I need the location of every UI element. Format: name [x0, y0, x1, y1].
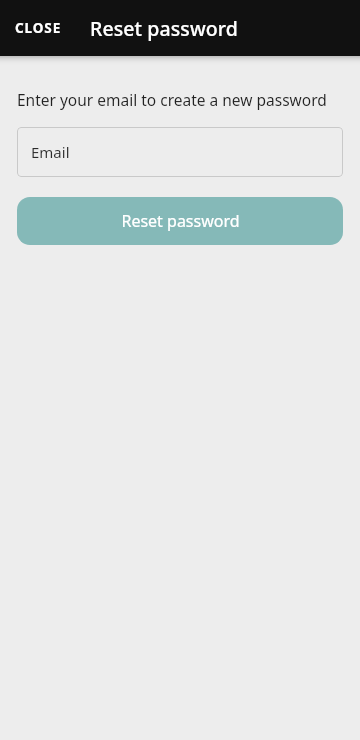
staticText: Reset password — [121, 210, 240, 232]
button[interactable]: Reset password — [17, 197, 343, 245]
staticText: CLOSE — [15, 19, 62, 37]
staticText: Enter your email to create a new passwor… — [17, 89, 327, 110]
staticText: Email — [31, 142, 70, 162]
button[interactable]: CLOSE — [15, 13, 62, 43]
button[interactable]: Email — [17, 127, 343, 177]
staticText: Reset password — [90, 15, 238, 42]
